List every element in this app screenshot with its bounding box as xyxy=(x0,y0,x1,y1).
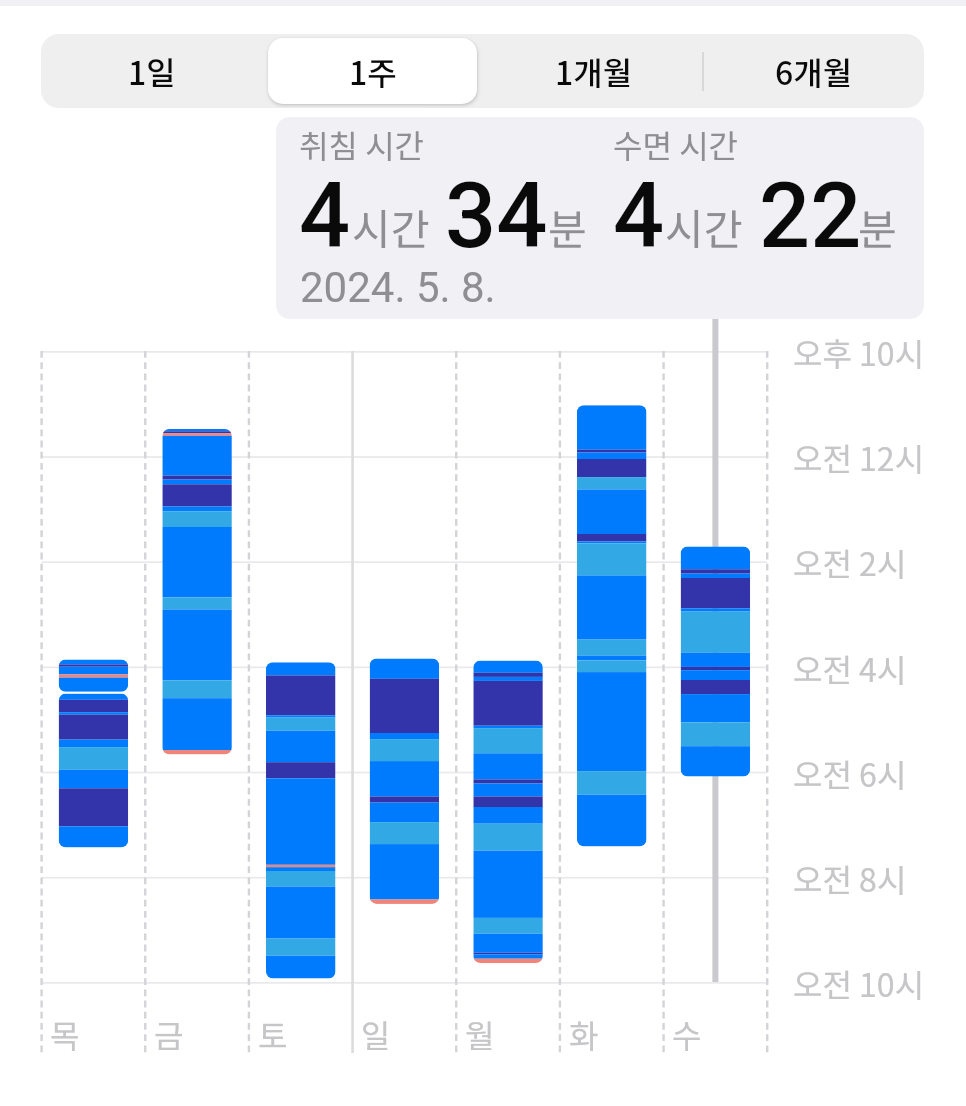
staticText: 오전 6시 xyxy=(793,750,907,796)
staticText: 오후 10시 xyxy=(793,329,925,375)
staticText: 오전 8시 xyxy=(793,855,907,901)
button[interactable]: 6개월 xyxy=(704,34,924,108)
staticText: 오전 12시 xyxy=(793,434,925,480)
staticText: 1개월 xyxy=(555,48,633,94)
button[interactable]: 1주 xyxy=(262,34,483,108)
button[interactable]: 금 수면 기록 xyxy=(145,351,249,1053)
staticText: 6개월 xyxy=(775,48,853,94)
staticText: 4 xyxy=(299,164,351,269)
staticText: 분 xyxy=(548,196,587,257)
staticText: 시간 xyxy=(665,196,743,257)
staticText: 오전 10시 xyxy=(793,960,925,1006)
staticText: 1주 xyxy=(349,48,397,94)
button[interactable]: 취침 시간 4시간 34분, 수면 시간 4시간 22분, 2024. 5. 8… xyxy=(276,117,924,319)
staticText: 목 xyxy=(50,1011,80,1057)
button[interactable]: 일 수면 기록 xyxy=(353,351,457,1053)
staticText: 4 xyxy=(613,164,665,269)
staticText: 22 xyxy=(759,164,862,269)
staticText: 2024. 5. 8. xyxy=(300,263,496,312)
staticText: 분 xyxy=(858,196,897,257)
button[interactable]: 토 수면 기록 xyxy=(249,351,353,1053)
staticText: 토 xyxy=(258,1011,288,1057)
staticText: 오전 4시 xyxy=(793,645,907,691)
button[interactable]: 월 수면 기록 xyxy=(456,351,560,1053)
staticText: 일 xyxy=(361,1011,391,1057)
staticText: 화 xyxy=(569,1011,599,1057)
button[interactable]: 화 수면 기록 xyxy=(560,351,664,1053)
staticText: 월 xyxy=(465,1011,495,1057)
staticText: 34 xyxy=(445,164,548,269)
staticText: 오전 2시 xyxy=(793,539,907,585)
button[interactable]: 목 수면 기록 xyxy=(42,351,146,1053)
staticText: 수면 시간 xyxy=(613,121,738,167)
button[interactable]: 1일 xyxy=(41,34,262,108)
staticText: 1일 xyxy=(128,48,176,94)
staticText: 시간 xyxy=(352,196,430,257)
staticText: 금 xyxy=(154,1011,184,1057)
button[interactable]: 1개월 xyxy=(483,34,704,108)
staticText: 취침 시간 xyxy=(299,121,424,167)
button[interactable]: 수 수면 기록 xyxy=(664,351,768,1053)
staticText: 수 xyxy=(672,1011,702,1057)
